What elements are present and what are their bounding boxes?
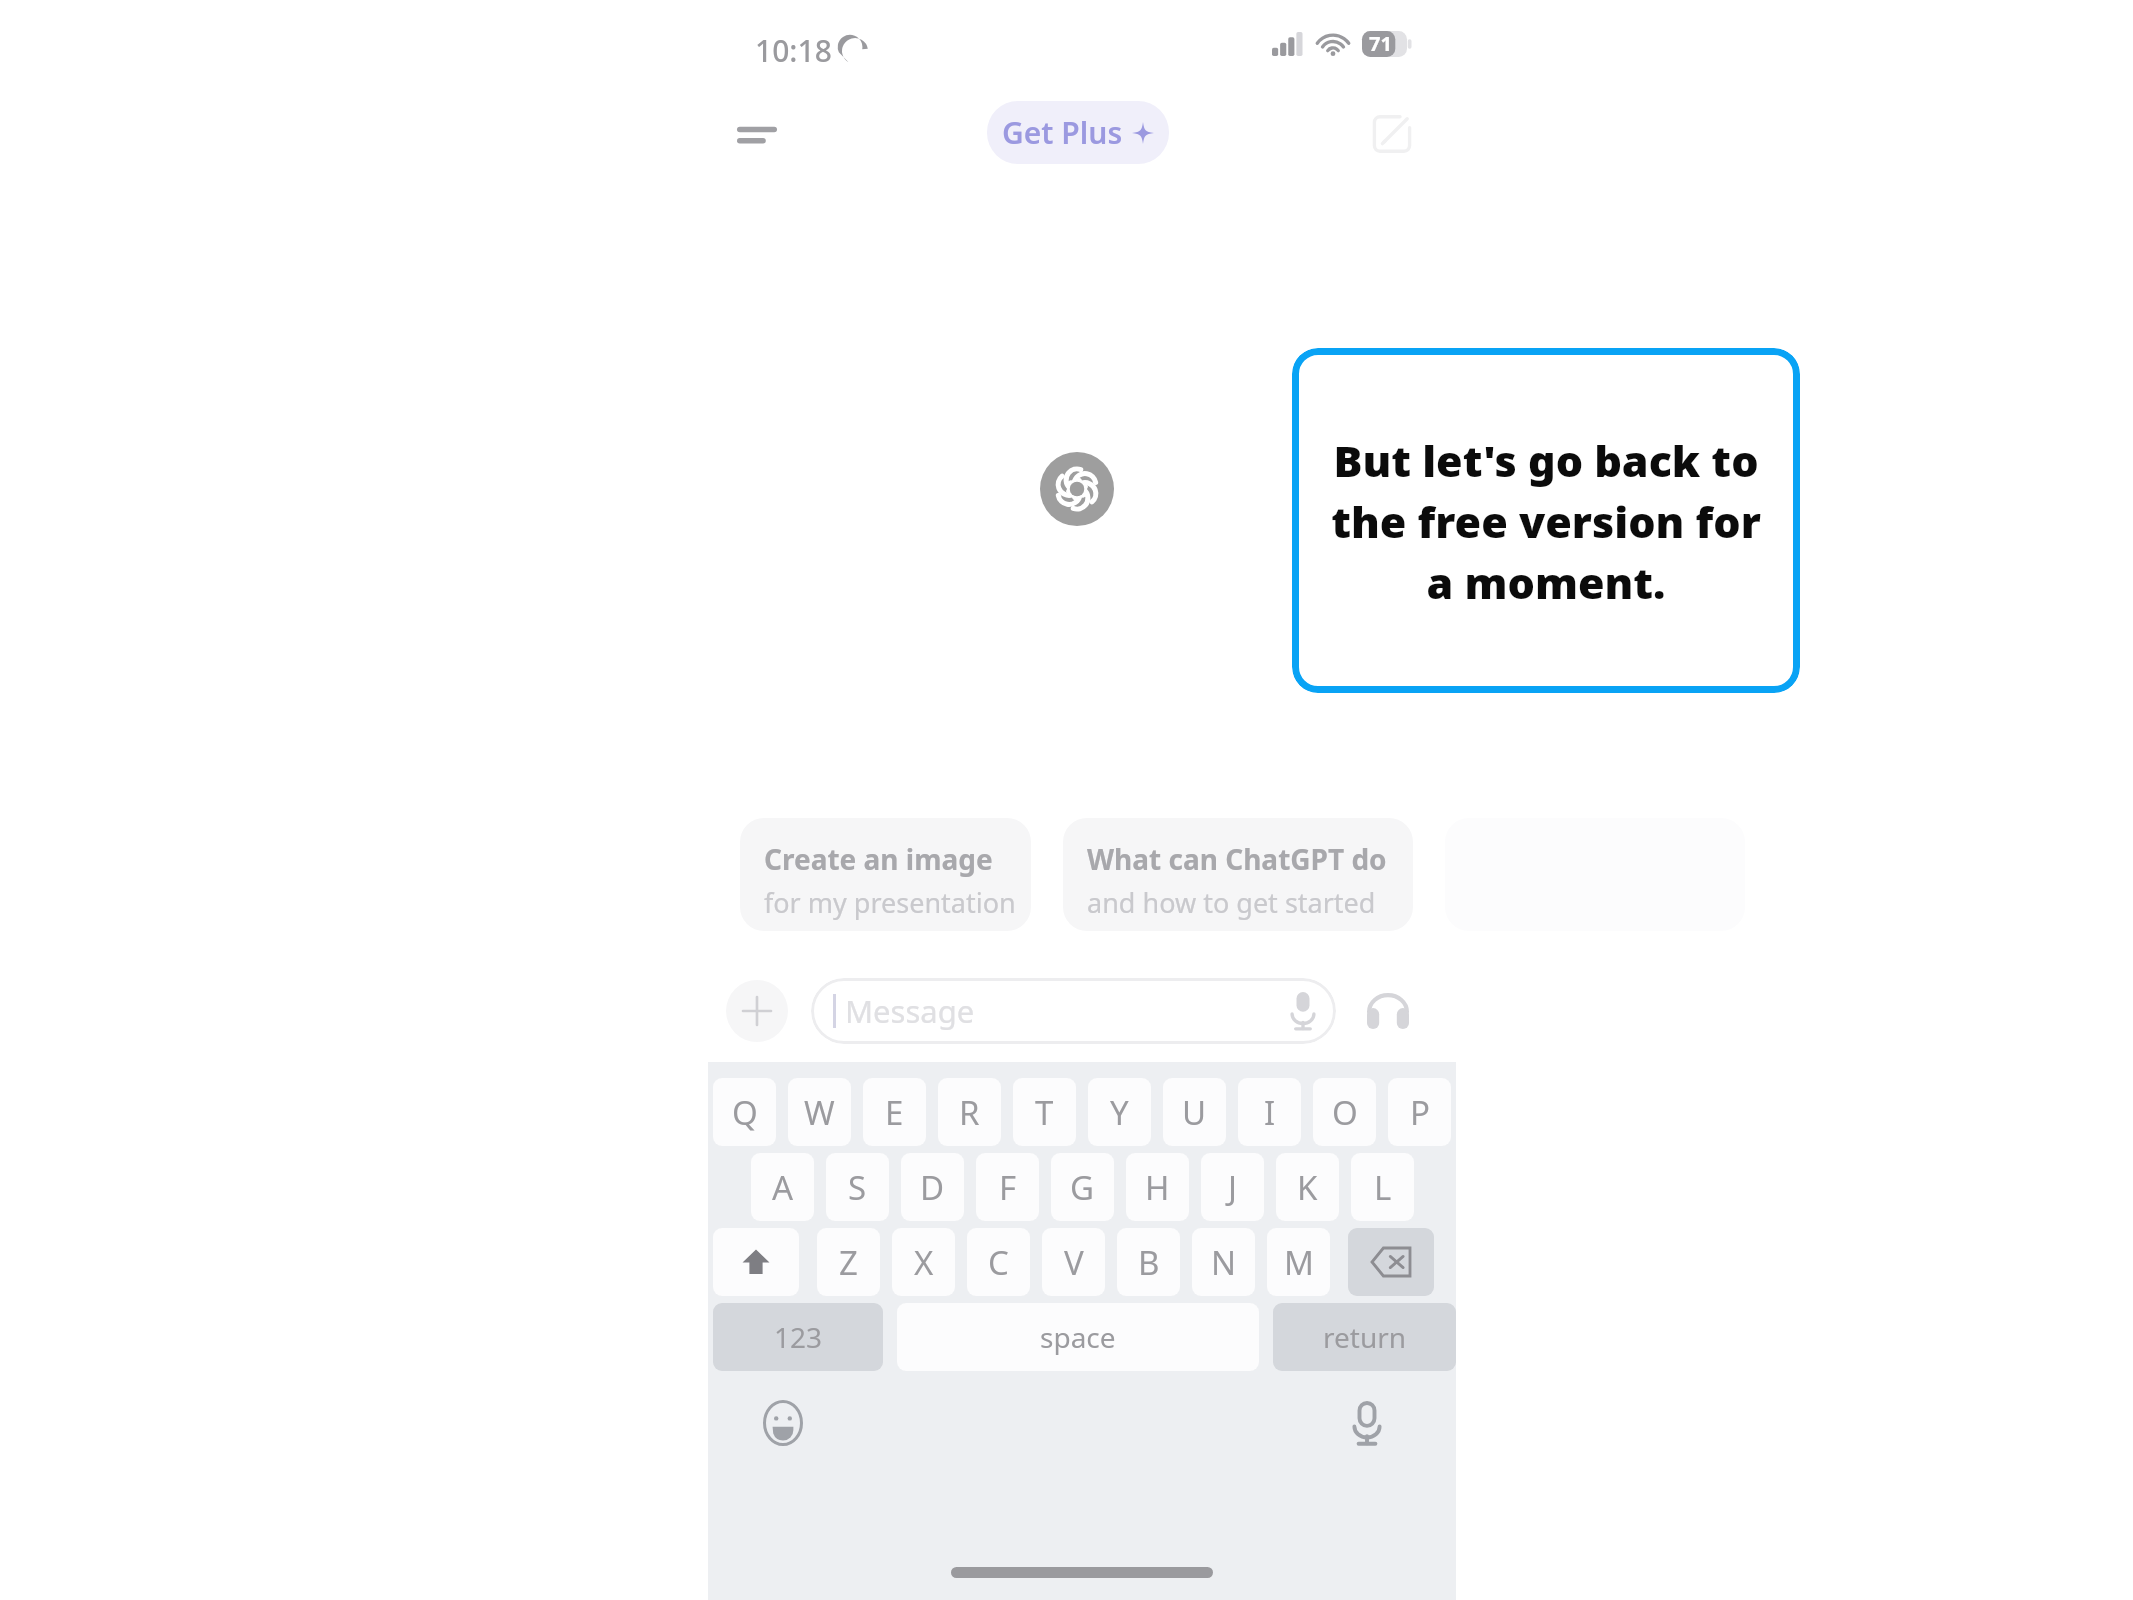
- button[interactable]: V: [1042, 1228, 1105, 1296]
- staticText: B: [1138, 1240, 1160, 1285]
- staticText: P: [1410, 1090, 1430, 1135]
- staticText: 71: [1369, 30, 1392, 57]
- button[interactable]: Dictation: [1336, 1392, 1398, 1454]
- button[interactable]: Voice mode: [1359, 982, 1417, 1040]
- button[interactable]: M: [1267, 1228, 1330, 1296]
- button[interactable]: K: [1276, 1153, 1339, 1221]
- staticText: K: [1297, 1165, 1318, 1210]
- staticText: J: [1228, 1165, 1238, 1210]
- staticText: Y: [1110, 1090, 1129, 1135]
- staticText: 123: [774, 1318, 823, 1356]
- other: Voice input: [1290, 992, 1316, 1030]
- button[interactable]: 123: [713, 1303, 883, 1371]
- staticText: return: [1323, 1318, 1407, 1356]
- staticText: I: [1264, 1090, 1276, 1135]
- staticText: Message: [845, 990, 975, 1032]
- staticText: F: [999, 1165, 1017, 1210]
- button[interactable]: F: [976, 1153, 1039, 1221]
- staticText: M: [1284, 1240, 1314, 1285]
- button[interactable]: Menu: [722, 100, 792, 170]
- button[interactable]: J: [1201, 1153, 1264, 1221]
- staticText: G: [1070, 1165, 1095, 1210]
- button[interactable]: W: [788, 1078, 851, 1146]
- staticText: L: [1374, 1165, 1392, 1210]
- button[interactable]: H: [1126, 1153, 1189, 1221]
- staticText: Create an image: [764, 840, 993, 878]
- button[interactable]: G: [1051, 1153, 1114, 1221]
- staticText: E: [885, 1090, 904, 1135]
- staticText: X: [914, 1240, 934, 1285]
- staticText: S: [848, 1165, 867, 1210]
- staticText: Get Plus: [1002, 112, 1123, 153]
- staticText: C: [988, 1240, 1009, 1285]
- button[interactable]: L: [1351, 1153, 1414, 1221]
- staticText: But let's go back to the free version fo…: [1326, 431, 1766, 611]
- button[interactable]: Z: [817, 1228, 880, 1296]
- staticText: Z: [839, 1240, 858, 1285]
- staticText: N: [1211, 1240, 1237, 1285]
- button[interactable]: But let's go back to the free version fo…: [1292, 348, 1800, 693]
- button[interactable]: return: [1273, 1303, 1456, 1371]
- button[interactable]: What can ChatGPT do: [1063, 818, 1413, 931]
- button[interactable]: R: [938, 1078, 1001, 1146]
- staticText: V: [1064, 1240, 1084, 1285]
- button[interactable]: C: [967, 1228, 1030, 1296]
- button[interactable]: E: [863, 1078, 926, 1146]
- button[interactable]: Message: [811, 978, 1336, 1044]
- button[interactable]: space: [897, 1303, 1259, 1371]
- button[interactable]: X: [892, 1228, 955, 1296]
- button[interactable]: I: [1238, 1078, 1301, 1146]
- staticText: W: [804, 1090, 835, 1135]
- staticText: What can ChatGPT do: [1087, 840, 1387, 878]
- staticText: and how to get started: [1087, 884, 1376, 921]
- staticText: O: [1332, 1090, 1358, 1135]
- staticText: 10:18: [755, 30, 832, 71]
- button[interactable]: Create an image: [740, 818, 1031, 931]
- button[interactable]: B: [1117, 1228, 1180, 1296]
- button[interactable]: New chat: [1358, 100, 1426, 168]
- button[interactable]: Shift: [713, 1228, 799, 1296]
- staticText: Q: [732, 1090, 758, 1135]
- button[interactable]: Get Plus: [987, 101, 1169, 164]
- button[interactable]: D: [901, 1153, 964, 1221]
- button[interactable]: U: [1163, 1078, 1226, 1146]
- button[interactable]: Add attachment: [726, 980, 788, 1042]
- staticText: A: [772, 1165, 794, 1210]
- button[interactable]: Emoji: [752, 1392, 814, 1454]
- button[interactable]: Q: [713, 1078, 776, 1146]
- button[interactable]: T: [1013, 1078, 1076, 1146]
- button[interactable]: Y: [1088, 1078, 1151, 1146]
- staticText: H: [1145, 1165, 1170, 1210]
- button[interactable]: A: [751, 1153, 814, 1221]
- staticText: R: [959, 1090, 980, 1135]
- staticText: for my presentation: [764, 884, 1016, 921]
- staticText: D: [920, 1165, 945, 1210]
- button[interactable]: Backspace: [1348, 1228, 1434, 1296]
- staticText: T: [1035, 1090, 1054, 1135]
- staticText: space: [1040, 1318, 1116, 1356]
- button[interactable]: N: [1192, 1228, 1255, 1296]
- button[interactable]: P: [1388, 1078, 1451, 1146]
- button[interactable]: O: [1313, 1078, 1376, 1146]
- button[interactable]: S: [826, 1153, 889, 1221]
- staticText: U: [1182, 1090, 1207, 1135]
